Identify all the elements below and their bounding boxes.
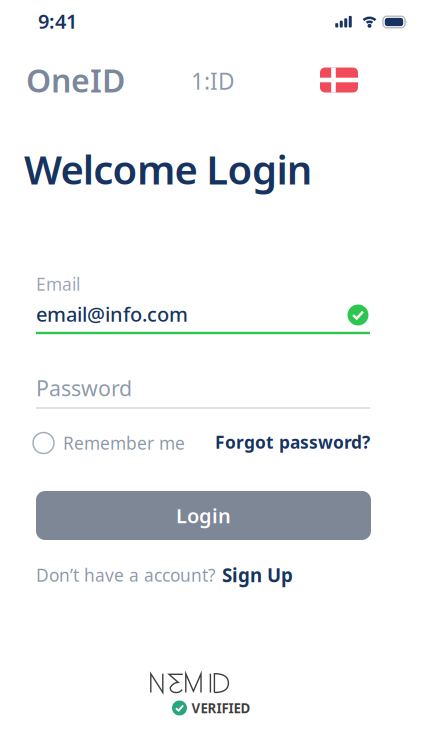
staticText: Remember me bbox=[63, 431, 185, 454]
staticText: Email bbox=[36, 272, 80, 295]
button[interactable]: Forgot password? bbox=[170, 430, 370, 453]
secureTextField[interactable]: Password bbox=[36, 376, 370, 414]
staticText: OneID bbox=[26, 59, 125, 101]
staticText: VERIFIED bbox=[191, 699, 250, 717]
staticText: Welcome Login bbox=[24, 142, 313, 195]
button[interactable]: Remember me bbox=[33, 431, 185, 454]
textField[interactable]: email@info.com bbox=[36, 272, 370, 336]
staticText: Login bbox=[176, 502, 231, 529]
staticText: 1:ID bbox=[191, 66, 235, 96]
staticText: 9:41 bbox=[38, 8, 77, 34]
button[interactable]: Language: Danish bbox=[320, 67, 358, 92]
button[interactable]: Sign Up bbox=[222, 563, 293, 587]
staticText: Forgot password? bbox=[215, 430, 370, 453]
staticText: email@info.com bbox=[36, 301, 188, 327]
staticText: Password bbox=[36, 374, 132, 402]
staticText: Sign Up bbox=[222, 563, 293, 587]
button[interactable]: Login bbox=[36, 491, 371, 540]
staticText: Don’t have a account? bbox=[36, 563, 216, 586]
